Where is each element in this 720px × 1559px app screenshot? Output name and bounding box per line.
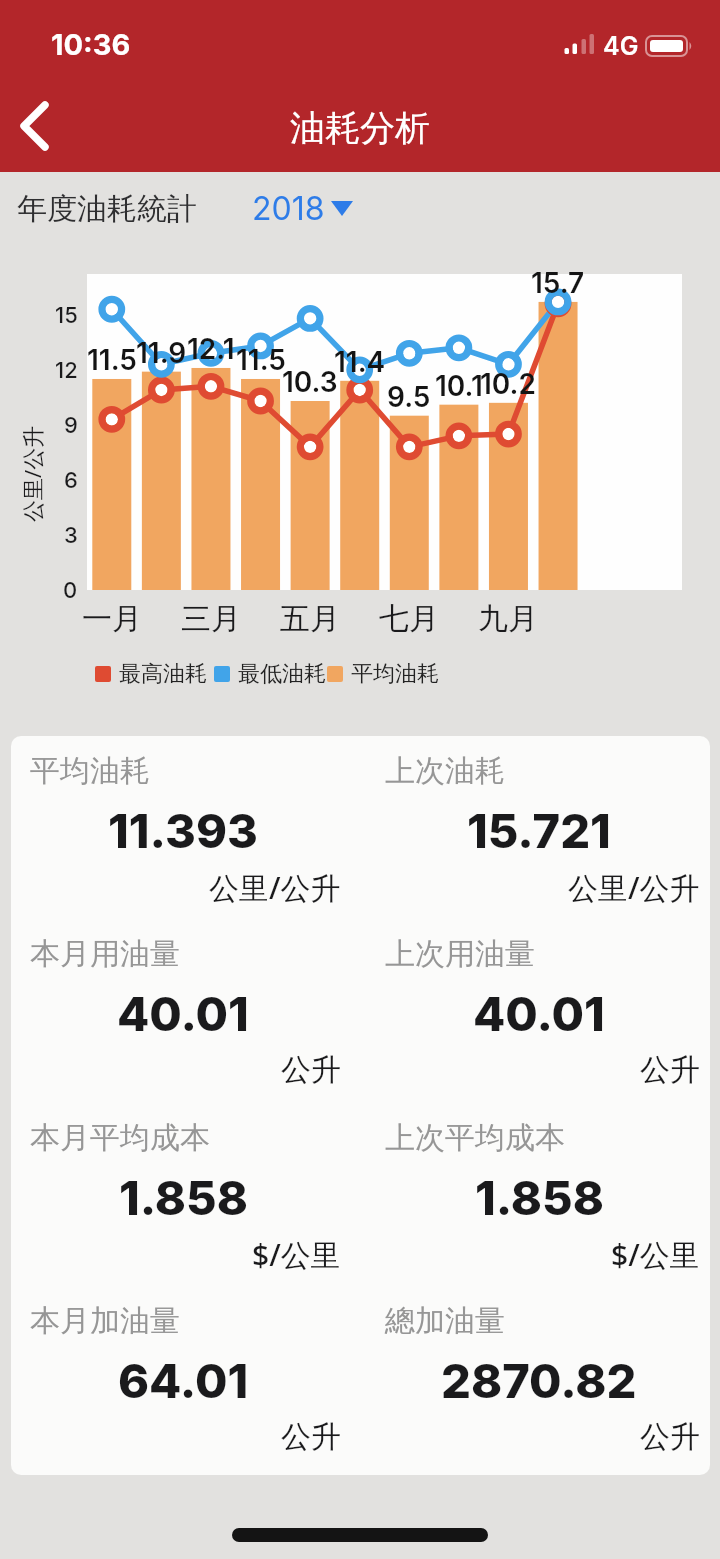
staticText: 上次平均成本 [385,1119,565,1157]
staticText: 11.9 [136,336,187,366]
staticText: 1.858 [119,1169,248,1225]
staticText: 三月 [181,600,241,636]
staticText: 最低油耗 [238,660,326,688]
staticText: 平均油耗 [30,752,150,790]
staticText: 10.3 [282,365,338,395]
staticText: 公里/公升 [209,867,341,907]
staticText: 公升 [640,1418,700,1456]
staticText: 油耗分析 [290,106,430,148]
staticText: 40.01 [117,985,249,1041]
staticText: $/公里 [611,1234,700,1274]
staticText: 本月加油量 [30,1302,180,1340]
staticText: 6 [64,467,78,494]
staticText: 11.393 [108,802,258,858]
staticText: 15 [55,302,78,329]
staticText: 0 [63,577,78,604]
staticText: 1.858 [475,1169,604,1225]
staticText: 12.1 [187,332,235,362]
staticText: 9 [64,412,78,439]
staticText: 公升 [281,1051,341,1089]
staticText: 上次油耗 [385,752,505,790]
staticText: 七月 [379,600,439,636]
staticText: 公升 [640,1051,700,1089]
staticText: 10.1 [435,369,483,399]
staticText: 總加油量 [385,1302,505,1340]
staticText: 11.5 [87,343,137,373]
staticText: 12 [55,357,78,384]
staticText: 公里/公升 [568,867,700,907]
staticText: 平均油耗 [351,660,439,688]
staticText: 2018 [252,189,325,228]
staticText: 2870.82 [441,1352,637,1408]
button[interactable]: 2018 [250,188,326,228]
staticText: $/公里 [252,1234,341,1274]
staticText: 五月 [280,600,340,636]
button[interactable] [8,96,68,156]
staticText: 10.2 [480,367,536,397]
staticText: 九月 [478,600,538,636]
staticText: 11.4 [334,345,386,375]
staticText: 10:36 [51,27,131,61]
staticText: 3 [64,522,78,549]
staticText: 上次用油量 [385,935,535,973]
staticText: 年度油耗統計 [17,190,197,226]
staticText: 本月用油量 [30,935,180,973]
staticText: 15.721 [467,802,611,858]
staticText: 一月 [82,600,142,636]
staticText: 64.01 [118,1352,249,1408]
staticText: 9.5 [387,380,431,410]
staticText: 公里/公升 [17,425,47,522]
staticText: 公升 [281,1418,341,1456]
staticText: 本月平均成本 [30,1119,210,1157]
staticText: 4G [603,31,639,61]
staticText: 40.01 [473,985,605,1041]
staticText: 最高油耗 [119,660,207,688]
staticText: 11.5 [236,343,286,373]
staticText: 15.7 [531,266,585,296]
